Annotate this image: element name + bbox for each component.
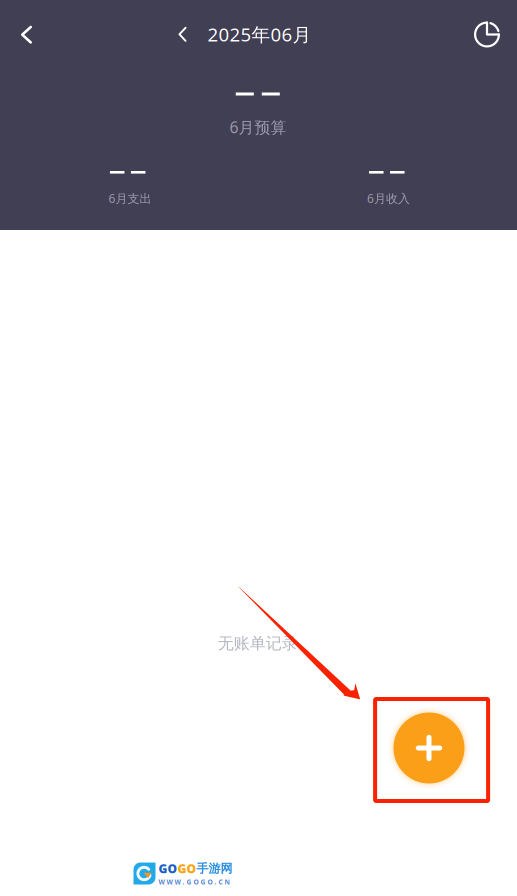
staticText: 6月预算 [229,117,286,138]
staticText: 6月收入 [367,190,410,206]
staticText: 2025年06月 [207,22,311,47]
staticText: 无账单记录 [218,634,298,653]
button[interactable]: Back [0,13,52,57]
staticText: GO [177,861,196,876]
staticText: 6月支出 [108,190,151,206]
button[interactable]: 2025年06月 [178,12,311,56]
button[interactable]: Statistics [461,12,513,56]
staticText: GO [158,861,177,876]
button[interactable]: Add record [387,706,471,790]
staticText: W W W . G O G O . C N [158,877,229,886]
staticText: 手游网 [196,861,232,876]
